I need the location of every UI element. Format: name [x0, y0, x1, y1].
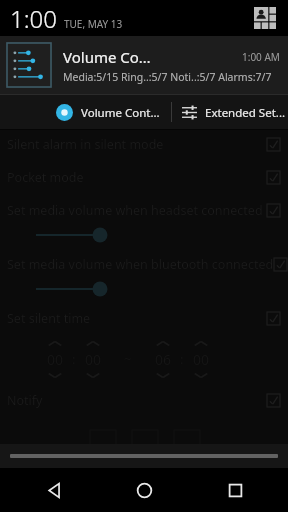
button[interactable]: Set media volume when headset connected: [0, 199, 288, 221]
button[interactable]: Home: [107, 468, 181, 512]
button[interactable]: Set media volume when bluetooth connecte…: [0, 253, 288, 275]
staticText: Set silent time: [7, 310, 91, 327]
button[interactable]: Toggle: [174, 430, 200, 450]
staticText: Silent alarm in silent mode: [7, 136, 164, 153]
button[interactable]: Volume Control Ex: [0, 36, 288, 94]
button[interactable]: Quick settings: [250, 3, 280, 33]
button[interactable]: Back: [17, 468, 91, 512]
button[interactable]: Close notification shade: [0, 444, 288, 468]
button[interactable]: Toggle: [90, 430, 116, 450]
staticText: Set media volume when headset connected: [7, 202, 263, 219]
staticText: Media:5/15 Ring..:5/7 Noti..:5/7 Alarms:…: [63, 70, 272, 84]
staticText: TUE, MAY 13: [64, 17, 123, 31]
button[interactable]: Recents: [198, 468, 272, 512]
button[interactable]: Volume Cont...: [56, 104, 171, 121]
button[interactable]: Toggle: [132, 430, 158, 450]
staticText: Volume Cont...: [81, 105, 160, 121]
staticText: Notify: [7, 392, 43, 409]
staticText: 1:00: [10, 2, 57, 35]
staticText: Extended Set...: [205, 105, 286, 121]
staticText: Pocket mode: [7, 169, 84, 186]
staticText: SKTELECOM|SKTELECOM: [85, 452, 204, 466]
staticText: Set media volume when bluetooth connecte…: [7, 256, 274, 273]
staticText: 1:00 AM: [242, 50, 280, 64]
button[interactable]: Extended Set...: [172, 104, 288, 121]
staticText: Volume Control Ex: [63, 47, 152, 67]
